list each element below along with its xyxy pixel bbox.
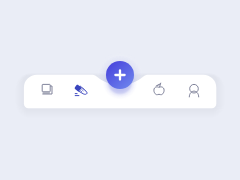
button[interactable]: Add (106, 61, 134, 89)
button[interactable]: Activity (70, 79, 92, 101)
button[interactable]: Nutrition (148, 79, 170, 101)
button[interactable]: Profile (183, 79, 205, 101)
button[interactable]: Library (36, 78, 58, 100)
